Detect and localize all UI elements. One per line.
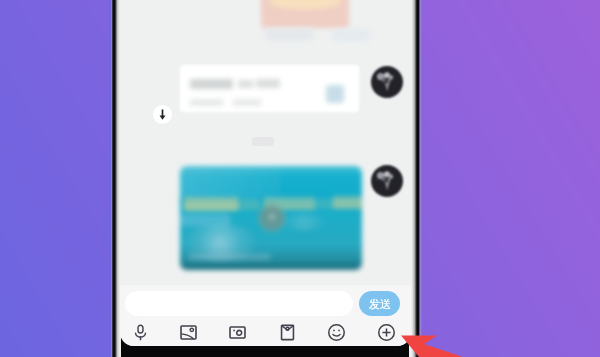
button[interactable]: 发送 xyxy=(359,291,400,316)
button[interactable]: Photo xyxy=(173,317,203,346)
button[interactable]: More xyxy=(371,317,401,346)
button[interactable]: Contact avatar xyxy=(371,66,403,98)
button[interactable]: Camera xyxy=(222,317,252,346)
button[interactable]: Contact avatar xyxy=(371,165,403,197)
button[interactable]: Play video xyxy=(180,166,362,270)
button[interactable] xyxy=(180,65,359,112)
button[interactable]: Red packet xyxy=(272,317,302,346)
button[interactable]: Emoji xyxy=(321,317,351,346)
staticText: 发送 xyxy=(369,297,391,311)
button[interactable]: Scroll to latest xyxy=(153,105,172,124)
button[interactable]: Voice message xyxy=(125,317,155,346)
